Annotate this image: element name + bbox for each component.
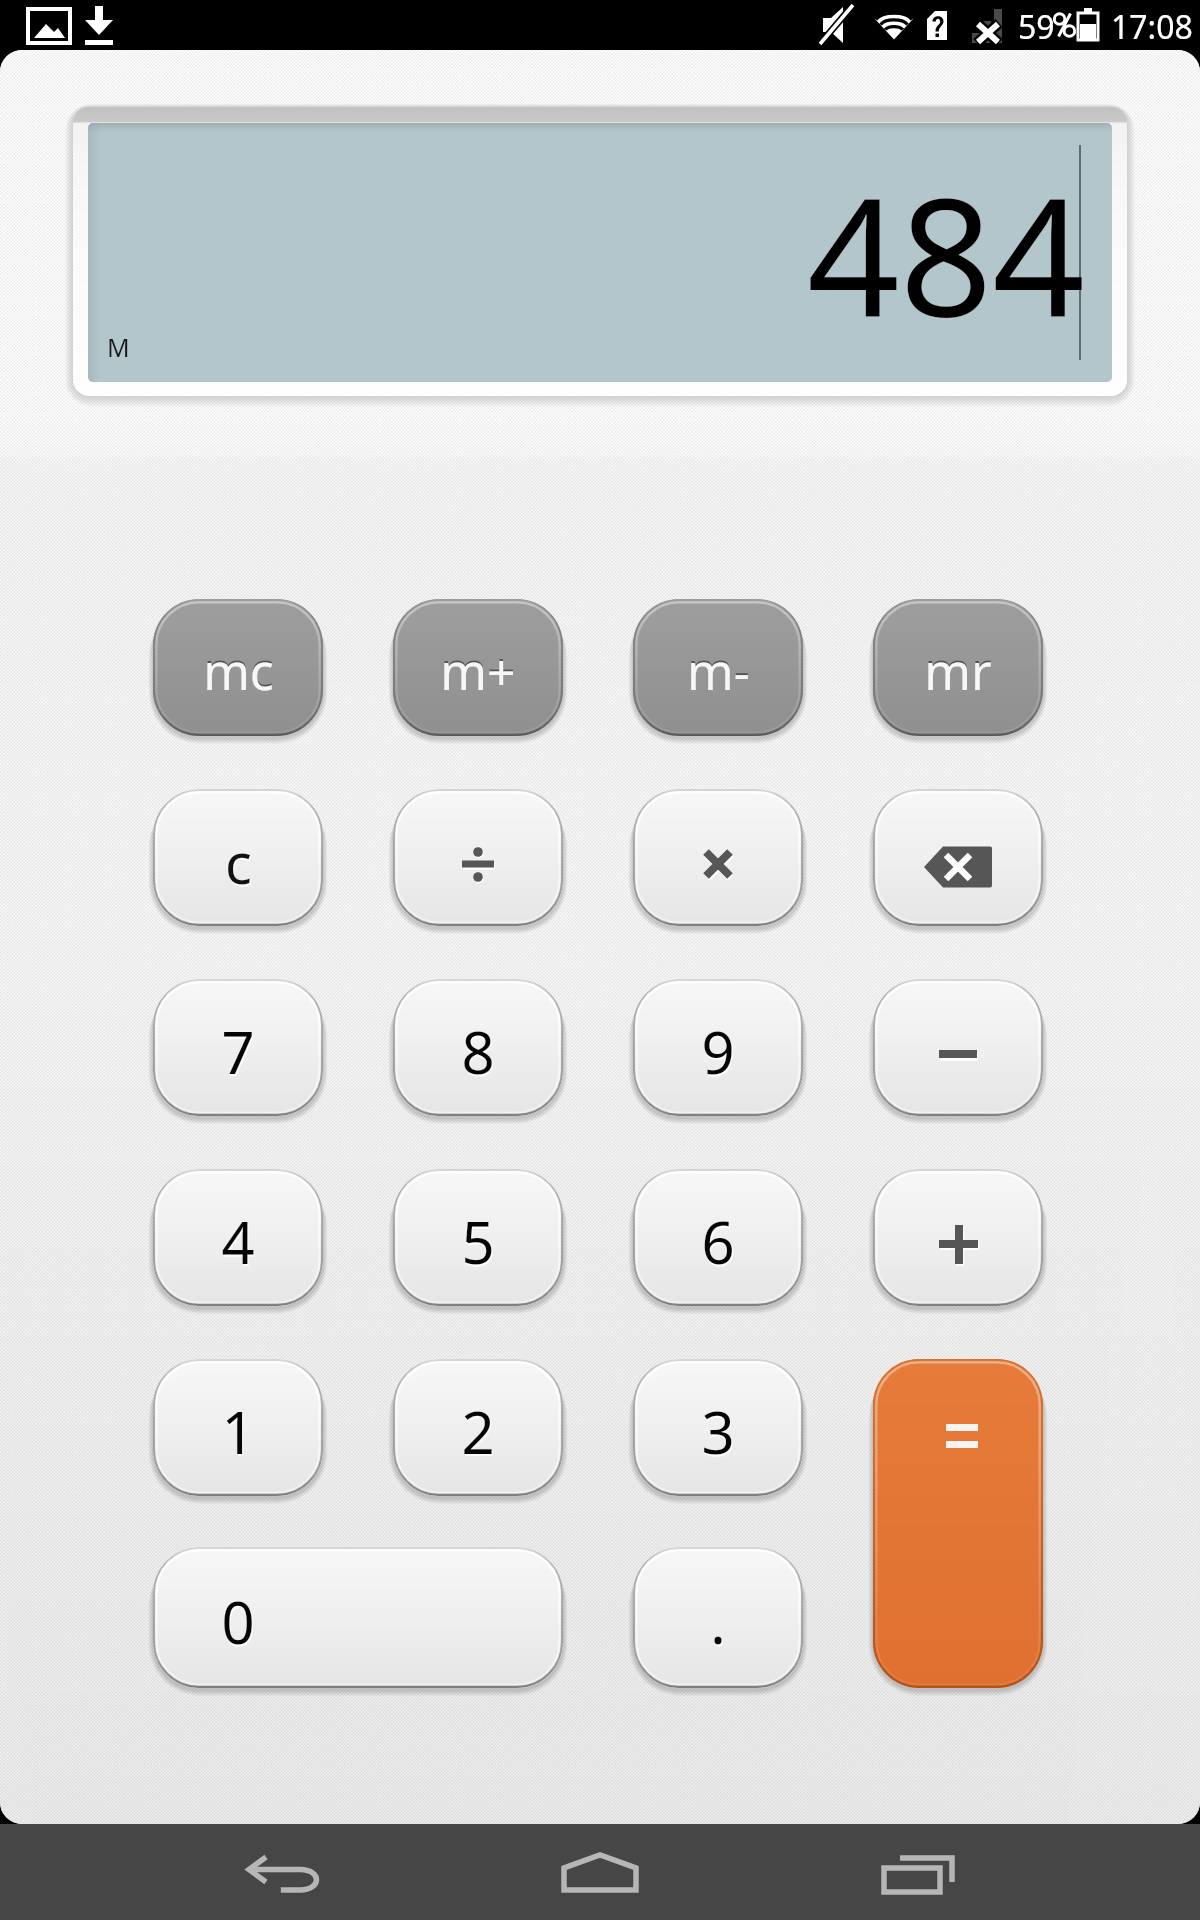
staticText: M (107, 330, 130, 364)
staticText: 2 (461, 1392, 495, 1471)
button[interactable]: 1 (153, 1359, 323, 1496)
button[interactable]: Back (200, 1824, 380, 1920)
staticText: 2 (462, 1394, 496, 1473)
button[interactable]: Equals (873, 1359, 1043, 1688)
staticText: c (225, 824, 252, 900)
staticText: m+ (440, 635, 516, 703)
button[interactable]: m- (633, 599, 803, 736)
staticText: mc (203, 635, 274, 703)
staticText: 0 (221, 1582, 255, 1661)
button[interactable] (873, 1169, 1043, 1306)
button[interactable]: 9 (633, 979, 803, 1116)
staticText: mc (203, 637, 274, 705)
button[interactable]: Recent apps (826, 1824, 1006, 1920)
staticText: 4 (222, 1204, 256, 1283)
staticText: 7 (221, 1012, 255, 1091)
staticText: 0 (222, 1584, 256, 1663)
staticText: 3 (701, 1392, 735, 1471)
button[interactable]: m+ (393, 599, 563, 736)
button[interactable]: 7 (153, 979, 323, 1116)
button[interactable]: 8 (393, 979, 563, 1116)
staticText: 8 (461, 1012, 495, 1091)
staticText: 59 (1018, 5, 1055, 49)
staticText: c (226, 826, 253, 902)
button[interactable]: 6 (633, 1169, 803, 1306)
button[interactable]: mr (873, 599, 1043, 736)
staticText: 4 (221, 1202, 255, 1281)
button[interactable] (633, 789, 803, 926)
staticText: mr (924, 637, 992, 705)
staticText: 5 (461, 1202, 495, 1281)
staticText: 17:08 (1111, 5, 1193, 49)
button[interactable]: Home (510, 1824, 690, 1920)
button[interactable]: 3 (633, 1359, 803, 1496)
staticText: m- (687, 637, 750, 705)
button[interactable]: 2 (393, 1359, 563, 1496)
button[interactable]: 5 (393, 1169, 563, 1306)
staticText: 6 (702, 1204, 736, 1283)
button[interactable]: . (633, 1547, 803, 1688)
staticText: 1 (221, 1392, 255, 1471)
staticText: . (710, 1582, 726, 1661)
staticText: 6 (701, 1202, 735, 1281)
staticText: 8 (462, 1014, 496, 1093)
staticText: 9 (701, 1012, 735, 1091)
button[interactable] (873, 979, 1043, 1116)
staticText: . (711, 1584, 727, 1663)
button[interactable]: mc (153, 599, 323, 736)
staticText: 7 (222, 1014, 256, 1093)
button[interactable]: Backspace (873, 789, 1043, 926)
staticText: 5 (462, 1204, 496, 1283)
staticText: m+ (440, 637, 516, 705)
button[interactable]: 4 (153, 1169, 323, 1306)
staticText: mr (924, 635, 992, 703)
button[interactable] (393, 789, 563, 926)
staticText: m- (687, 635, 750, 703)
staticText: 9 (702, 1014, 736, 1093)
button[interactable]: c (153, 789, 323, 926)
staticText: 1 (222, 1394, 256, 1473)
staticText: 3 (702, 1394, 736, 1473)
staticText: 484 (807, 143, 1085, 364)
button[interactable]: 0 (153, 1547, 563, 1688)
